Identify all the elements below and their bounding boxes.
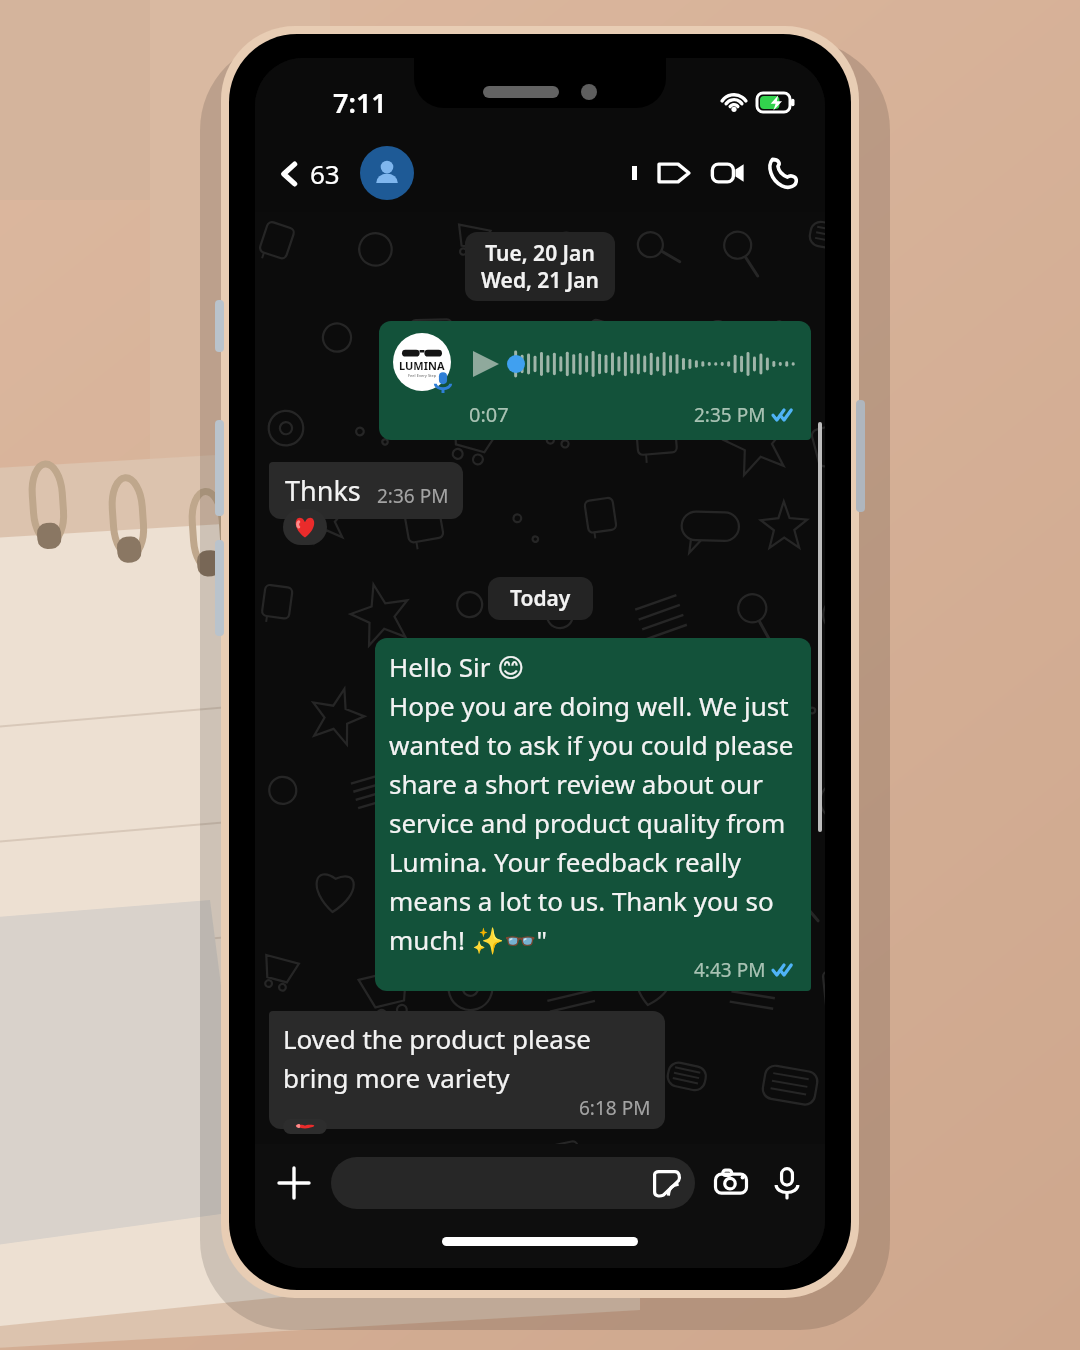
staticText: Thnks: [285, 472, 361, 509]
button[interactable]: Voice message: [765, 1161, 809, 1205]
button[interactable]: Message input: [331, 1157, 695, 1209]
staticText: 2:36 PM: [377, 483, 449, 509]
button[interactable]: Back to chats, 63 unread: [271, 150, 346, 197]
staticText: 0:07: [469, 401, 509, 428]
button[interactable]: Voice call: [759, 150, 805, 196]
button[interactable]: Video call: [705, 150, 751, 196]
staticText: 4:43 PM: [694, 957, 766, 983]
staticText: 7:11: [333, 84, 387, 121]
staticText: 6:18 PM: [579, 1095, 651, 1121]
staticText: Loved the product please bring more vari…: [283, 1021, 651, 1095]
button[interactable]: Contact profile: [360, 146, 414, 200]
button[interactable]: Heart reaction: [283, 1119, 327, 1134]
staticText: LUMINA: [399, 358, 445, 373]
staticText: Today: [510, 584, 571, 613]
button[interactable]: Thnks: [269, 462, 463, 519]
button[interactable]: Hello Sir 😊 Hope you are doing well. We …: [375, 638, 811, 991]
button[interactable]: Attach: [271, 1160, 317, 1206]
staticText: 63: [310, 156, 340, 191]
button[interactable]: Voice message, 0:07: [379, 321, 811, 440]
staticText: 2:35 PM: [694, 402, 766, 428]
button[interactable]: Camera: [709, 1161, 753, 1205]
staticText: Tue, 20 Jan Wed, 21 Jan: [481, 239, 599, 294]
button[interactable]: Labels: [651, 150, 697, 196]
staticText: Hello Sir 😊 Hope you are doing well. We …: [389, 649, 797, 957]
staticText: Feel Every Step: [408, 373, 437, 378]
button[interactable]: Heart reaction: [283, 509, 327, 545]
button[interactable]: Loved the product please bring more vari…: [269, 1011, 665, 1129]
